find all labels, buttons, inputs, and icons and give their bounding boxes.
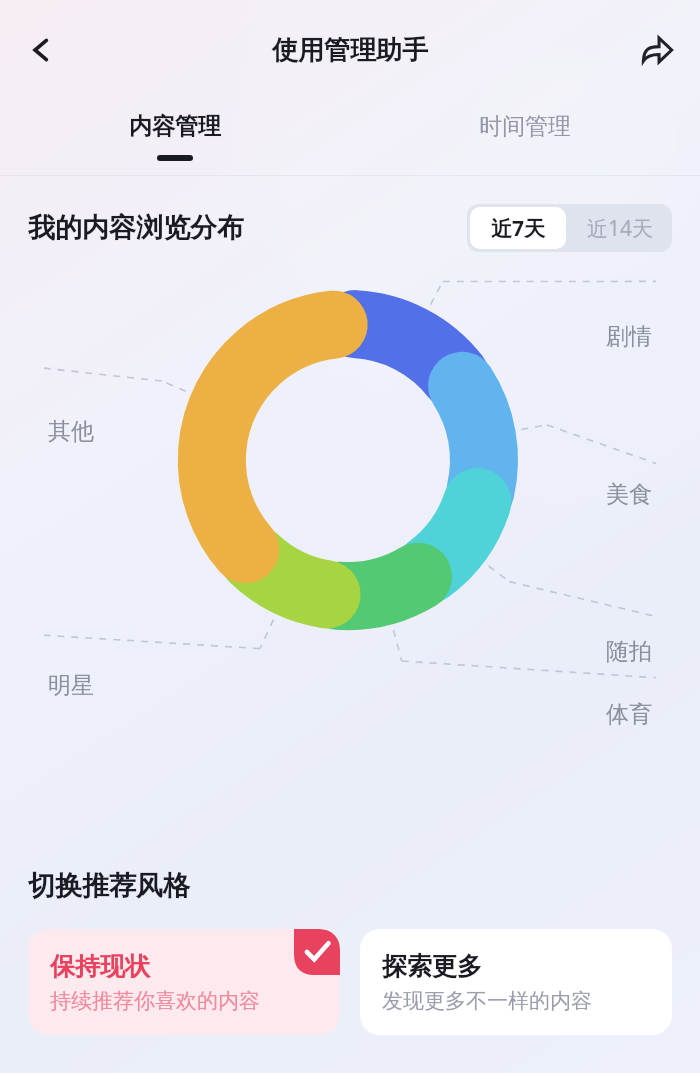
button[interactable]: 保持现状 bbox=[28, 929, 340, 1035]
staticText: 探索更多 bbox=[382, 951, 482, 982]
staticText: 切换推荐风格 bbox=[28, 869, 190, 903]
staticText: 发现更多不一样的内容 bbox=[382, 988, 592, 1014]
button[interactable]: 近14天 bbox=[569, 204, 672, 252]
staticText: 内容管理 bbox=[129, 112, 221, 141]
staticText: 近7天 bbox=[491, 214, 546, 243]
staticText: 我的内容浏览分布 bbox=[28, 211, 244, 245]
staticText: 时间管理 bbox=[479, 112, 571, 141]
staticText: 近14天 bbox=[587, 214, 654, 243]
button[interactable]: 时间管理 bbox=[350, 100, 700, 176]
button[interactable]: 探索更多 bbox=[360, 929, 672, 1035]
staticText: 随拍 bbox=[606, 637, 652, 666]
button[interactable]: 近7天 bbox=[470, 207, 566, 249]
staticText: 美食 bbox=[606, 480, 652, 509]
button[interactable]: Share bbox=[626, 19, 688, 81]
staticText: 其他 bbox=[48, 417, 94, 446]
button[interactable]: Back bbox=[10, 19, 72, 81]
staticText: 剧情 bbox=[606, 322, 652, 351]
staticText: 明星 bbox=[48, 671, 94, 700]
staticText: 持续推荐你喜欢的内容 bbox=[50, 988, 260, 1014]
staticText: 保持现状 bbox=[50, 951, 150, 982]
staticText: 体育 bbox=[606, 700, 652, 729]
button[interactable]: 内容管理 bbox=[0, 100, 350, 176]
staticText: 使用管理助手 bbox=[272, 34, 428, 67]
